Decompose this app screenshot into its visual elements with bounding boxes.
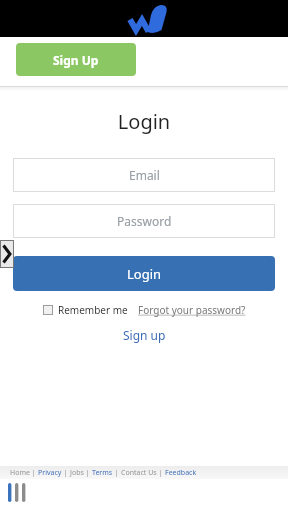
staticText: | bbox=[84, 468, 92, 478]
staticText: | bbox=[113, 468, 121, 478]
staticText: Login bbox=[127, 265, 162, 283]
button[interactable]: Forgot your password? bbox=[138, 303, 246, 317]
staticText: Email bbox=[129, 167, 160, 183]
staticText: | bbox=[157, 468, 165, 478]
staticText: | bbox=[30, 468, 38, 478]
button[interactable] bbox=[43, 305, 53, 315]
staticText: | bbox=[62, 468, 70, 478]
button[interactable]: Login bbox=[13, 256, 275, 291]
staticText: Feedback bbox=[165, 468, 197, 478]
staticText: Privacy bbox=[38, 468, 62, 478]
button[interactable]: Password bbox=[13, 204, 275, 238]
staticText: Contact Us bbox=[121, 468, 157, 478]
staticText: Jobs bbox=[70, 468, 84, 478]
staticText: Remember me bbox=[58, 303, 128, 317]
staticText: Home bbox=[10, 468, 30, 478]
staticText: Password bbox=[117, 213, 172, 229]
button[interactable] bbox=[0, 240, 14, 268]
staticText: Terms bbox=[92, 468, 113, 478]
button[interactable]: Sign Up bbox=[16, 43, 136, 76]
button[interactable]: Sign up bbox=[123, 327, 166, 343]
button[interactable]: Email bbox=[13, 158, 275, 192]
staticText: Login bbox=[0, 108, 288, 135]
button[interactable] bbox=[0, 479, 30, 512]
staticText: Sign Up bbox=[53, 52, 99, 68]
